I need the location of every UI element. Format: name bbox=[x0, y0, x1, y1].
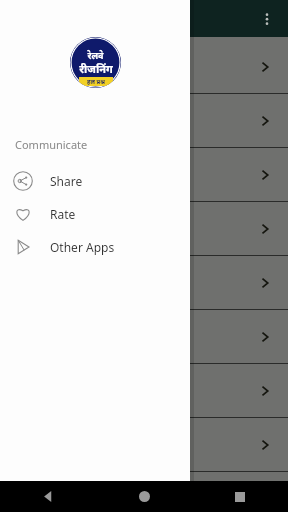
button[interactable]: Other Apps bbox=[0, 230, 190, 263]
button[interactable]: App logo bbox=[70, 37, 121, 88]
button[interactable]: सेट - 9 bbox=[0, 472, 288, 512]
staticText: सेट - 9 bbox=[16, 483, 53, 502]
staticText: रीजनिंग bbox=[79, 61, 113, 76]
button[interactable]: सेट - 8 bbox=[0, 418, 288, 471]
button[interactable]: More options bbox=[250, 2, 284, 36]
button[interactable]: सेट - 5 bbox=[0, 256, 288, 309]
button[interactable]: Back bbox=[0, 481, 96, 512]
button[interactable]: सेट - 3 bbox=[0, 148, 288, 201]
button[interactable]: सेट - 1 bbox=[0, 40, 288, 93]
staticText: Communicate bbox=[15, 137, 88, 152]
button[interactable]: Share bbox=[0, 164, 190, 197]
button[interactable]: Rate bbox=[0, 197, 190, 230]
button[interactable]: सेट - 4 bbox=[0, 202, 288, 255]
button[interactable]: सेट - 6 bbox=[0, 310, 288, 363]
staticText: Share bbox=[50, 173, 83, 189]
button[interactable]: सेट - 2 bbox=[0, 94, 288, 147]
staticText: Rate bbox=[50, 206, 76, 222]
staticText: Other Apps bbox=[50, 239, 115, 255]
staticText: हल प्रश्न bbox=[87, 78, 105, 86]
staticText: सेट - 4 bbox=[16, 219, 53, 238]
button[interactable]: सेट - 7 bbox=[0, 364, 288, 417]
staticText: रेलवे bbox=[87, 49, 104, 61]
button[interactable]: Home bbox=[96, 481, 192, 512]
button[interactable]: Recent apps bbox=[192, 481, 288, 512]
staticText: सेट - 3 bbox=[16, 165, 53, 184]
